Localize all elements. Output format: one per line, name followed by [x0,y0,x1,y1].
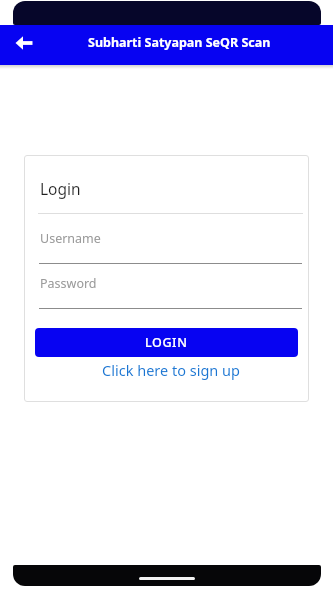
staticText: Subharti Satyapan SeQR Scan [88,34,271,51]
button[interactable] [39,272,302,311]
staticText: Click here to sign up [102,360,240,380]
staticText: Login [40,178,81,199]
button[interactable]: LOGIN [35,328,298,357]
staticText: LOGIN [145,334,188,351]
button[interactable] [39,227,302,266]
staticText: Username [40,230,101,247]
button[interactable] [12,31,36,55]
button[interactable]: Click here to sign up [24,359,309,381]
staticText: Password [40,275,97,292]
